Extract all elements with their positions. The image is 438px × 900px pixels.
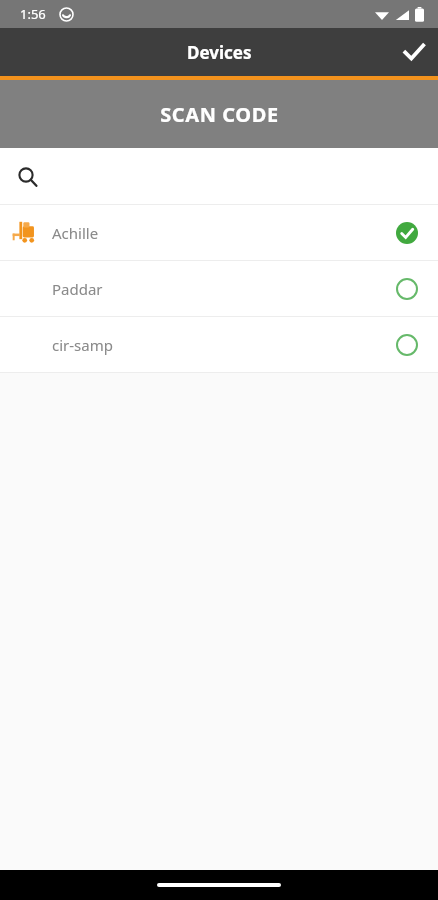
button[interactable]: Achille — [0, 205, 438, 261]
button[interactable]: Confirm — [390, 28, 438, 76]
button[interactable]: Search devices — [0, 148, 438, 205]
staticText: 1:56 — [20, 5, 46, 23]
staticText: SCAN CODE — [160, 101, 279, 128]
staticText: cir-samp — [52, 335, 113, 355]
staticText: Devices — [187, 41, 252, 64]
staticText: Paddar — [52, 279, 103, 299]
staticText: Achille — [52, 223, 99, 243]
button[interactable]: cir-samp — [0, 317, 438, 373]
button[interactable]: SCAN CODE — [0, 80, 438, 148]
button[interactable]: Paddar — [0, 261, 438, 317]
